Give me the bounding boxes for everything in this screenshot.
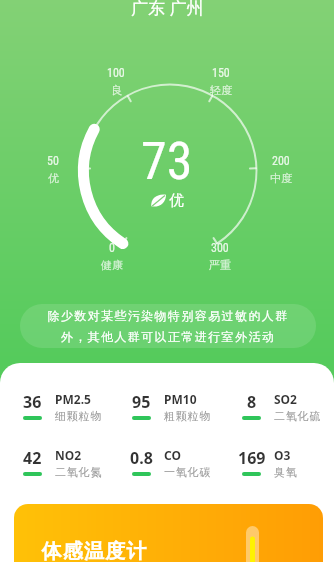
staticText: 优 xyxy=(48,171,59,185)
staticText: 一氧化碳 xyxy=(164,465,212,479)
button[interactable]: 36 xyxy=(23,391,123,425)
staticText: O3 xyxy=(274,447,291,463)
staticText: 0.8 xyxy=(130,447,153,469)
staticText: 50 xyxy=(47,154,59,168)
staticText: 臭氧 xyxy=(274,465,298,479)
button[interactable]: 8 xyxy=(242,391,334,425)
staticText: 细颗粒物 xyxy=(55,409,103,423)
staticText: 轻度 xyxy=(210,83,232,97)
staticText: 150 xyxy=(212,66,230,80)
staticText: 良 xyxy=(111,83,122,97)
staticText: PM10 xyxy=(164,391,197,407)
staticText: 粗颗粒物 xyxy=(164,409,212,423)
staticText: 中度 xyxy=(270,171,292,185)
staticText: 除少数对某些污染物特别容易过敏的人群外，其他人群可以正常进行室外活动 xyxy=(44,308,292,344)
staticText: 200 xyxy=(272,154,290,168)
staticText: SO2 xyxy=(274,391,297,407)
staticText: 体感温度计 xyxy=(41,539,147,562)
staticText: 100 xyxy=(107,66,125,80)
button[interactable]: 95 xyxy=(132,391,232,425)
staticText: 95 xyxy=(132,391,151,413)
staticText: PM2.5 xyxy=(55,391,91,407)
staticText: 0 xyxy=(109,241,115,255)
staticText: 二氧化硫 xyxy=(274,409,322,423)
button[interactable]: 体感温度计 xyxy=(14,504,323,562)
staticText: CO xyxy=(164,447,181,463)
staticText: 健康 xyxy=(101,258,123,272)
staticText: NO2 xyxy=(55,447,82,463)
staticText: 36 xyxy=(23,391,42,413)
button[interactable]: 169 xyxy=(242,447,334,481)
button[interactable]: 42 xyxy=(23,447,123,481)
staticText: 169 xyxy=(238,447,266,469)
staticText: 8 xyxy=(247,391,257,413)
staticText: 广东 广州 xyxy=(131,0,204,19)
staticText: 二氧化氮 xyxy=(55,465,103,479)
button[interactable]: 0.8 xyxy=(132,447,232,481)
staticText: 42 xyxy=(23,447,42,469)
staticText: 优 xyxy=(169,191,184,210)
staticText: 300 xyxy=(211,241,229,255)
staticText: 严重 xyxy=(209,258,231,272)
staticText: 73 xyxy=(141,131,193,192)
button[interactable]: 除少数对某些污染物特别容易过敏的人群外，其他人群可以正常进行室外活动 xyxy=(20,304,316,348)
